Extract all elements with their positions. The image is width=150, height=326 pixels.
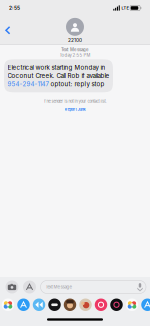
staticText: Text Message	[61, 47, 89, 52]
button[interactable]: App 1	[126, 298, 138, 311]
staticText: LTE	[121, 6, 128, 10]
button[interactable]: Text Message field	[40, 280, 146, 293]
button[interactable]: Report Junk	[64, 107, 85, 112]
button[interactable]: App 3	[33, 298, 45, 311]
button[interactable]: App 4	[48, 298, 61, 311]
staticText: Electrical work starting Monday in	[7, 64, 105, 71]
staticText: optout: reply stop	[48, 80, 104, 88]
staticText: Coconut Creek. Call Rob if available	[7, 72, 109, 79]
button[interactable]: App 1	[2, 298, 14, 311]
button[interactable]: App 6	[79, 298, 92, 311]
button[interactable]: App 8	[110, 298, 123, 311]
button[interactable]: App 2	[141, 298, 150, 311]
staticText: Text Message	[45, 284, 72, 290]
staticText: 22100	[68, 37, 82, 43]
staticText: Report Junk	[64, 107, 85, 112]
button[interactable]: App 2	[17, 298, 30, 311]
button[interactable]: Camera	[5, 280, 18, 293]
button[interactable]: Apps	[23, 280, 36, 293]
staticText: 954-294-1147	[7, 80, 48, 88]
button[interactable]: App 5	[64, 298, 76, 311]
button[interactable]: App 7	[95, 298, 107, 311]
button[interactable]: Back	[0, 16, 16, 44]
staticText: Today 2:55 PM	[59, 53, 90, 58]
staticText: The sender is not in your contact list.	[43, 99, 106, 104]
staticText: 2:55	[9, 5, 20, 11]
